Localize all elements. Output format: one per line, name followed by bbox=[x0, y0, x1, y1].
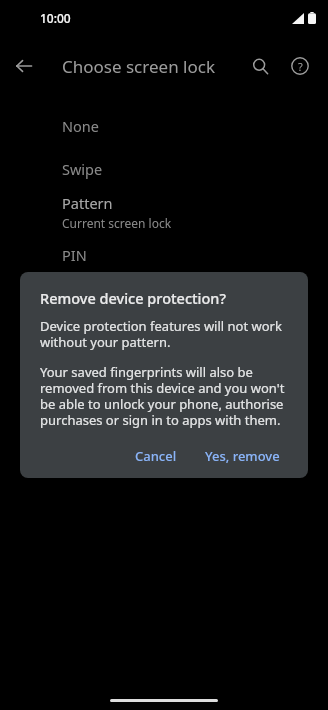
staticText: Choose screen lock bbox=[62, 55, 215, 78]
staticText: Password bbox=[62, 288, 128, 308]
staticText: Cancel bbox=[135, 447, 177, 465]
button[interactable]: Search bbox=[240, 46, 280, 86]
staticText: Your saved fingerprints will also be rem… bbox=[40, 363, 288, 428]
staticText: Current screen lock bbox=[62, 215, 172, 231]
button[interactable]: Password bbox=[0, 276, 328, 319]
staticText: None bbox=[62, 116, 99, 136]
staticText: Remove device protection? bbox=[40, 288, 226, 308]
staticText: Yes, remove bbox=[205, 447, 280, 465]
staticText: 10:00 bbox=[40, 10, 71, 26]
button[interactable]: None bbox=[0, 104, 328, 147]
button[interactable]: PIN bbox=[0, 233, 328, 276]
button[interactable]: Yes, remove bbox=[197, 440, 288, 472]
staticText: PIN bbox=[62, 245, 87, 265]
staticText: Swipe bbox=[62, 159, 103, 179]
staticText: ? bbox=[298, 59, 303, 74]
button[interactable]: Help bbox=[280, 46, 320, 86]
staticText: Device protection features will not work… bbox=[40, 317, 288, 350]
button[interactable]: Back bbox=[8, 50, 40, 82]
button[interactable]: Swipe bbox=[0, 147, 328, 190]
button[interactable]: Pattern bbox=[0, 190, 328, 233]
button[interactable]: Cancel bbox=[127, 440, 185, 472]
staticText: Pattern bbox=[62, 193, 113, 213]
